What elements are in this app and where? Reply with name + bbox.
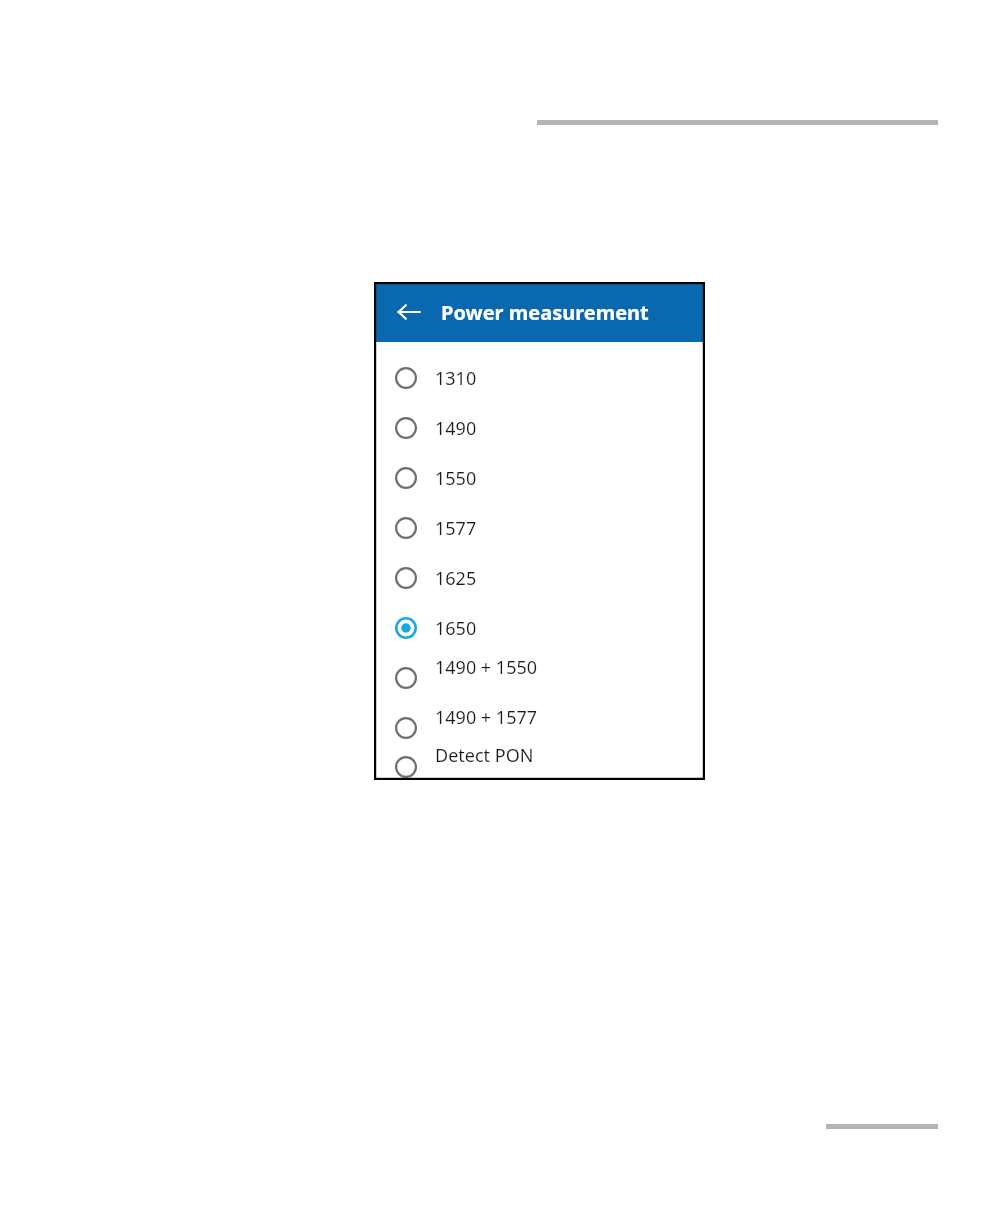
button[interactable]: 1490 + 1550 — [374, 653, 705, 703]
staticText: 1625 — [435, 566, 477, 591]
staticText: 1490 — [435, 416, 477, 441]
button[interactable]: 1625 — [374, 553, 705, 603]
staticText: Power measurement — [441, 299, 649, 326]
button[interactable]: 1490 + 1577 — [374, 703, 705, 753]
button[interactable]: Detect PON — [374, 753, 705, 780]
staticText: 1550 — [435, 466, 477, 491]
button[interactable]: 1577 — [374, 503, 705, 553]
button[interactable]: Back — [390, 293, 428, 331]
button[interactable]: 1490 — [374, 403, 705, 453]
staticText: 1490 + 1577 — [435, 705, 538, 730]
staticText: Detect PON — [435, 743, 534, 768]
button[interactable]: 1650 — [374, 603, 705, 653]
staticText: 1650 — [435, 616, 477, 641]
button[interactable]: 1550 — [374, 453, 705, 503]
staticText: 1490 + 1550 — [435, 655, 538, 680]
staticText: 1577 — [435, 516, 477, 541]
staticText: 1310 — [435, 366, 477, 391]
button[interactable]: 1310 — [374, 353, 705, 403]
